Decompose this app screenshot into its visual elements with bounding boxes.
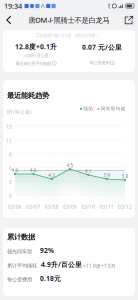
staticText: 0.18元: [40, 274, 61, 283]
staticText: 累计平均能耗: [7, 262, 37, 269]
staticText: 03/09: [63, 204, 77, 210]
staticText: 03/10: [81, 204, 95, 210]
staticText: 领先同车型: [7, 248, 32, 255]
staticText: 12: [6, 138, 12, 144]
staticText: 0.07 元/公里: [82, 43, 122, 52]
staticText: 4.3: [48, 172, 55, 179]
staticText: 0: [9, 193, 12, 199]
staticText: 最近能耗趋势: [7, 91, 49, 100]
staticText: (升/百公里): [7, 109, 31, 115]
staticText: 4.6: [30, 167, 37, 174]
staticText: 19:34: [4, 1, 22, 11]
staticText: =3.8升/百公里: [23, 53, 48, 58]
staticText: 我的: [83, 106, 93, 112]
staticText: 4.5: [66, 162, 73, 169]
staticText: t: [108, 1, 110, 11]
staticText: 9: [9, 152, 12, 158]
staticText: 3.9: [103, 172, 110, 179]
staticText: 唐DM-i·黑骑士不是白龙马: [28, 15, 109, 25]
staticText: 03/12: [118, 204, 132, 210]
staticText: 又双叒叕打破了纪录，继续保持哦！: [35, 33, 99, 38]
staticText: 同车型均值: [101, 106, 126, 112]
staticText: 累计数据: [7, 232, 35, 242]
staticText: 每公里费用: [7, 276, 32, 283]
button[interactable]: Back: [0, 12, 18, 28]
staticText: 3: [9, 179, 12, 185]
staticText: 03/07: [26, 204, 40, 210]
staticText: 03/08: [45, 204, 59, 210]
staticText: 03/11: [100, 204, 114, 210]
staticText: 3.8: [121, 173, 128, 180]
staticText: 92%: [40, 246, 54, 255]
staticText: =11.9度+1.5升: [83, 263, 116, 269]
staticText: 4.1: [85, 168, 92, 175]
staticText: 4.9升/百公里: [41, 260, 82, 269]
staticText: 最近50公里平均能耗: [16, 60, 52, 66]
staticText: 6: [9, 165, 12, 172]
button[interactable]: Share: [120, 12, 138, 28]
staticText: 15: [6, 124, 12, 130]
staticText: 4.6: [11, 167, 18, 174]
staticText: 03/06: [8, 204, 22, 210]
staticText: 每公里费用: [90, 60, 110, 66]
staticText: 12.8度+0.1升: [15, 42, 57, 51]
